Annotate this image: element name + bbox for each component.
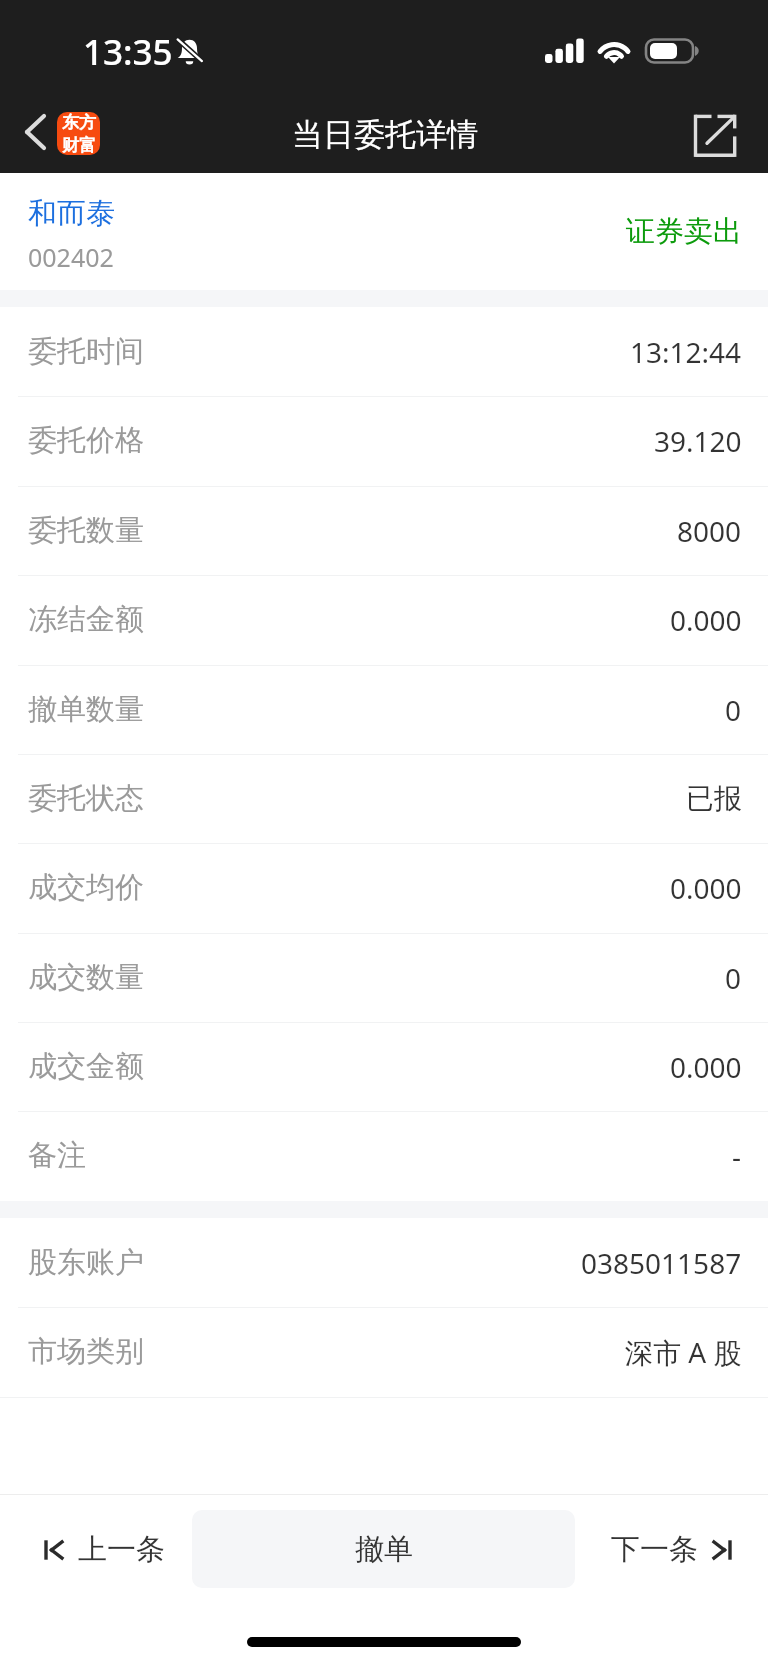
staticText: 成交均价: [28, 869, 144, 906]
staticText: 0.000: [670, 601, 742, 639]
staticText: 0.000: [670, 869, 742, 907]
staticText: 撤单数量: [28, 691, 144, 728]
button[interactable]: Share: [687, 108, 743, 164]
button[interactable]: 撤单: [192, 1510, 575, 1588]
staticText: 备注: [28, 1137, 86, 1174]
staticText: 0385011587: [581, 1244, 742, 1282]
staticText: 委托时间: [28, 333, 144, 370]
button[interactable]: 委托时间: [0, 307, 768, 396]
staticText: -: [732, 1137, 742, 1175]
button[interactable]: 市场类别: [0, 1307, 768, 1396]
staticText: 委托数量: [28, 512, 144, 549]
staticText: 财富: [62, 135, 96, 155]
staticText: 8000: [677, 512, 742, 550]
button[interactable]: 委托价格: [0, 396, 768, 485]
button[interactable]: 备注: [0, 1111, 768, 1200]
button[interactable]: 成交数量: [0, 933, 768, 1022]
button[interactable]: 委托状态: [0, 754, 768, 843]
button[interactable]: 成交金额: [0, 1022, 768, 1111]
staticText: 0: [725, 691, 742, 729]
staticText: 成交金额: [28, 1048, 144, 1085]
staticText: 13:12:44: [630, 333, 742, 371]
button[interactable]: 撤单数量: [0, 665, 768, 754]
button[interactable]: 下一条: [607, 1527, 740, 1572]
button[interactable]: 股东账户: [0, 1218, 768, 1307]
staticText: 证券卖出: [626, 213, 742, 250]
staticText: 当日委托详情: [292, 115, 478, 154]
staticText: 委托状态: [28, 780, 144, 817]
staticText: 市场类别: [28, 1333, 144, 1370]
button[interactable]: 委托数量: [0, 486, 768, 575]
button[interactable]: Back: [12, 105, 58, 151]
staticText: 已报: [686, 781, 742, 816]
staticText: 0.000: [670, 1048, 742, 1086]
button[interactable]: 上一条: [36, 1527, 169, 1572]
staticText: 成交数量: [28, 959, 144, 996]
staticText: 下一条: [611, 1531, 698, 1568]
staticText: 委托价格: [28, 422, 144, 459]
staticText: 东方: [62, 112, 96, 133]
staticText: 13:35: [83, 28, 173, 76]
staticText: 和而泰: [28, 195, 115, 232]
button[interactable]: 成交均价: [0, 843, 768, 932]
staticText: 深市 A 股: [625, 1333, 742, 1371]
button[interactable]: 冻结金额: [0, 575, 768, 664]
staticText: 撤单: [355, 1531, 413, 1568]
staticText: 002402: [28, 240, 114, 274]
staticText: 39.120: [654, 422, 742, 460]
staticText: 冻结金额: [28, 601, 144, 638]
staticText: 上一条: [78, 1531, 165, 1568]
staticText: 股东账户: [28, 1244, 144, 1281]
staticText: 0: [725, 959, 742, 997]
